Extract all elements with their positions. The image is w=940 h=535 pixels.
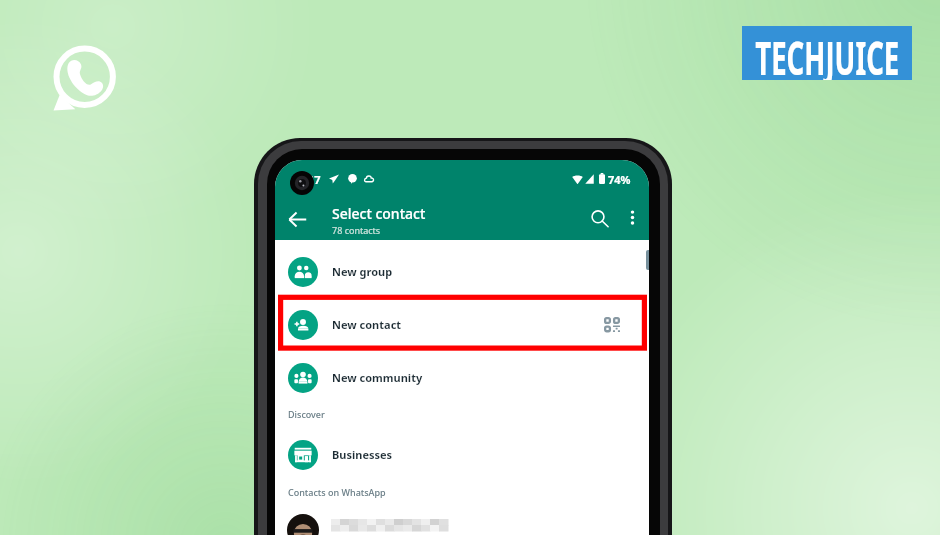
staticText: 74% (608, 172, 631, 187)
staticText: New community (332, 370, 423, 385)
button[interactable]: More options (617, 202, 647, 232)
staticText: New contact (332, 317, 402, 332)
staticText: Select contact (332, 204, 426, 223)
staticText: Contacts on WhatsApp (288, 486, 386, 498)
button[interactable]: TechJuice (742, 26, 912, 80)
button[interactable]: New group (275, 245, 649, 298)
staticText: TECHJUICE (755, 26, 900, 80)
staticText: 17 (308, 172, 321, 187)
button[interactable]: New contact (275, 298, 649, 351)
staticText: Discover (288, 408, 325, 420)
button[interactable] (275, 508, 649, 535)
button[interactable]: Back (280, 202, 314, 236)
button[interactable]: New community (275, 351, 649, 404)
staticText: New group (332, 264, 393, 279)
button[interactable]: Search (583, 202, 617, 236)
other: WhatsApp (50, 40, 120, 114)
staticText: 78 contacts (332, 224, 381, 236)
staticText: Businesses (332, 447, 393, 462)
button[interactable]: Businesses (275, 428, 649, 481)
